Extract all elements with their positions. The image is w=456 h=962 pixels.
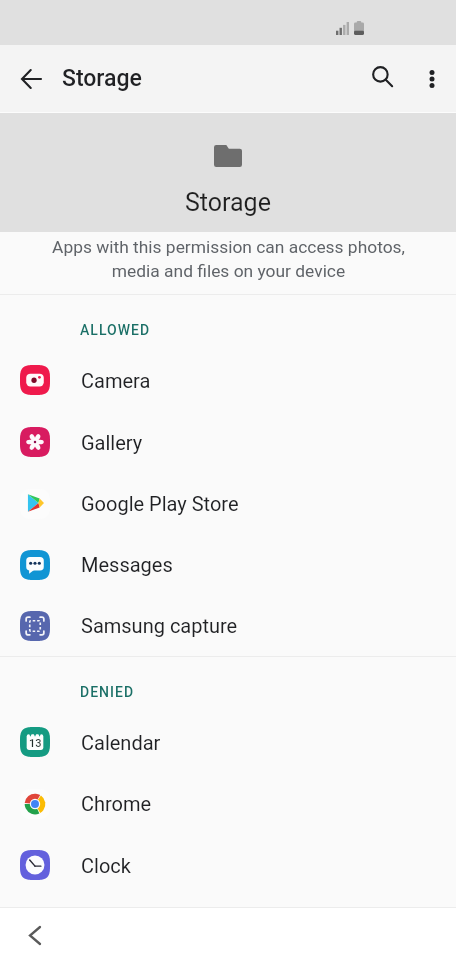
button[interactable]: Clock — [0, 834, 456, 896]
button[interactable]: Chrome — [0, 773, 456, 834]
staticText: Gallery — [81, 431, 143, 454]
button[interactable]: Google Play Store — [0, 473, 456, 534]
staticText: Chrome — [81, 792, 152, 815]
staticText: Storage — [62, 65, 142, 92]
staticText: Storage — [185, 188, 271, 217]
staticText: Calendar — [81, 731, 161, 754]
staticText: Messages — [81, 553, 173, 576]
button[interactable]: Navigate back — [11, 911, 59, 959]
button[interactable]: Search — [358, 52, 406, 100]
staticText: Clock — [81, 854, 131, 877]
button[interactable]: Back — [7, 55, 55, 103]
staticText: Apps with this permission can access pho… — [52, 237, 405, 281]
staticText: Samsung capture — [81, 614, 238, 637]
staticText: DENIED — [80, 684, 135, 700]
staticText: Google Play Store — [81, 492, 239, 515]
button[interactable]: Messages — [0, 534, 456, 595]
button[interactable]: Camera — [0, 349, 456, 411]
staticText: ALLOWED — [80, 322, 151, 338]
button[interactable]: Samsung capture — [0, 595, 456, 656]
button[interactable]: 13 — [0, 711, 456, 773]
staticText: 13 — [29, 737, 42, 750]
button[interactable]: More options — [408, 55, 456, 103]
staticText: Camera — [81, 369, 151, 392]
button[interactable]: Gallery — [0, 411, 456, 473]
